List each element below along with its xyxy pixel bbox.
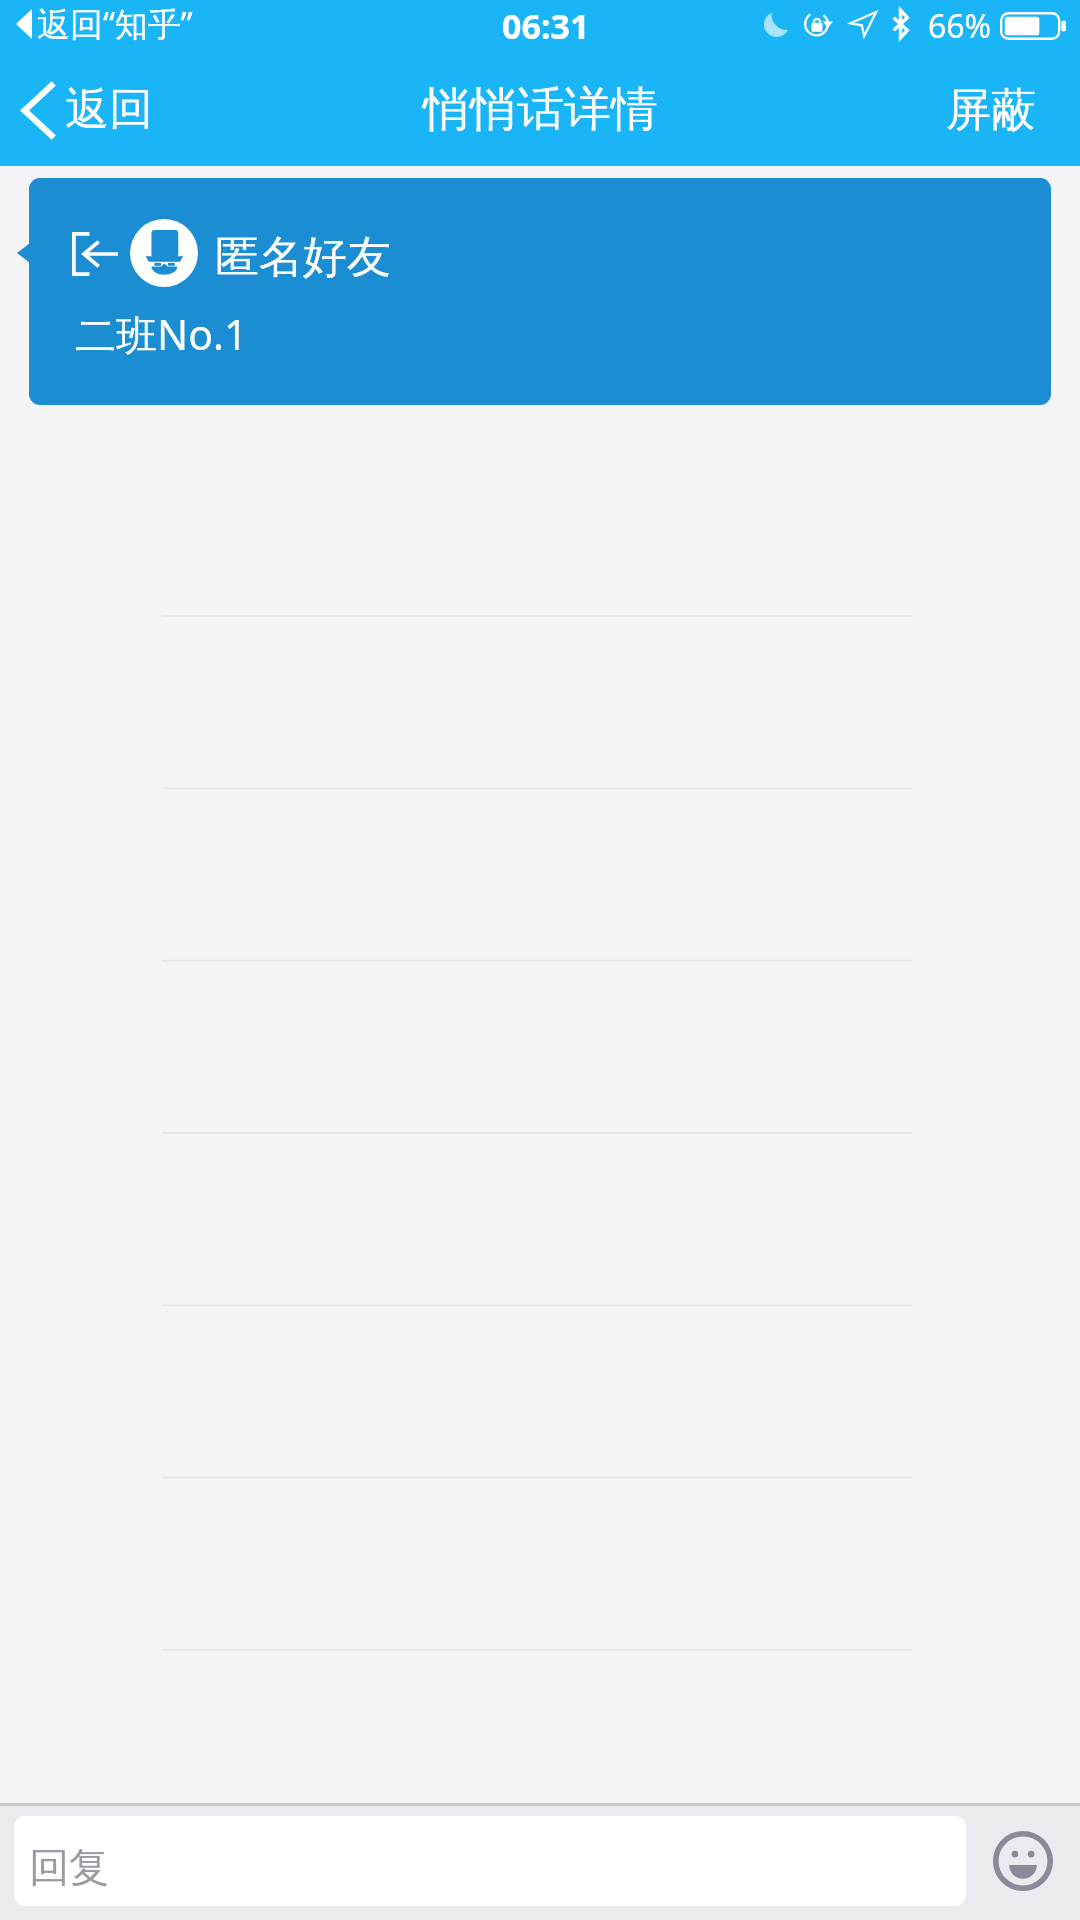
button[interactable]: 返回 xyxy=(0,73,181,148)
staticText: 返回 xyxy=(65,82,153,137)
other: Received message xyxy=(72,232,118,276)
other: Battery 66 percent xyxy=(1000,12,1066,40)
staticText: 二班No.1 xyxy=(75,306,248,362)
staticText: 回复 xyxy=(29,1842,109,1892)
staticText: 返回“知乎” xyxy=(37,1,193,46)
staticText: 屏蔽 xyxy=(946,82,1036,139)
staticText: 66% xyxy=(928,4,992,48)
button[interactable]: 返回“知乎” xyxy=(0,0,200,55)
staticText: 匿名好友 xyxy=(215,230,391,285)
button[interactable]: Emoji keyboard xyxy=(991,1829,1055,1893)
button[interactable]: 回复 xyxy=(14,1816,966,1906)
button[interactable]: Received message xyxy=(29,178,1051,405)
staticText: 悄悄话详情 xyxy=(423,80,658,139)
staticText: 06:31 xyxy=(502,3,590,49)
button[interactable]: 屏蔽 xyxy=(916,70,1080,151)
